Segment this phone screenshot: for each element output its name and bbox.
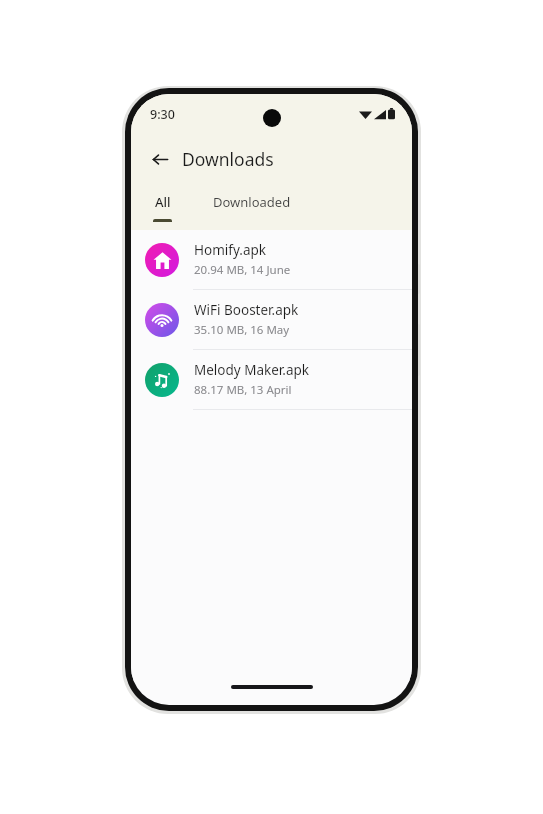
- staticText: Downloads: [182, 147, 274, 171]
- staticText: Downloaded: [213, 193, 291, 211]
- button[interactable]: Back: [147, 146, 173, 172]
- button[interactable]: All: [131, 184, 193, 230]
- staticText: 88.17 MB, 13 April: [194, 382, 292, 398]
- button[interactable]: Homify.apk: [131, 230, 412, 289]
- staticText: 35.10 MB, 16 May: [194, 322, 290, 338]
- staticText: 20.94 MB, 14 June: [194, 262, 291, 278]
- button[interactable]: Downloaded: [193, 184, 311, 230]
- button[interactable]: Melody Maker.apk: [131, 350, 412, 409]
- staticText: Melody Maker.apk: [194, 361, 309, 379]
- staticText: 9:30: [150, 106, 175, 123]
- staticText: All: [155, 193, 171, 211]
- button[interactable]: WiFi Booster.apk: [131, 290, 412, 349]
- staticText: WiFi Booster.apk: [194, 301, 299, 319]
- staticText: Homify.apk: [194, 241, 266, 259]
